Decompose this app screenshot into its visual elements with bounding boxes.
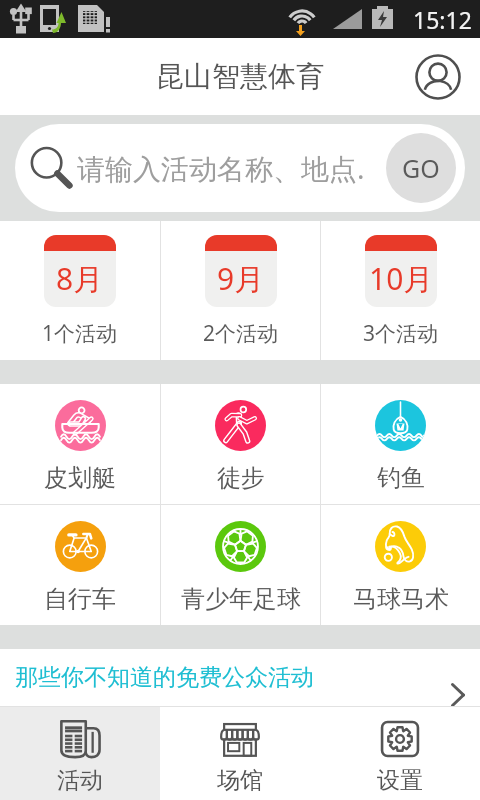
- button[interactable]: 钓鱼: [321, 384, 480, 504]
- button[interactable]: 那些你不知道的免费公众活动: [0, 649, 480, 707]
- staticText: 皮划艇: [44, 463, 116, 493]
- staticText: 8月: [56, 258, 104, 299]
- button[interactable]: 设置: [320, 707, 480, 800]
- staticText: GO: [402, 151, 440, 185]
- staticText: 3个活动: [363, 319, 439, 348]
- staticText: 马球马术: [353, 584, 449, 614]
- staticText: 那些你不知道的免费公众活动: [15, 663, 314, 692]
- staticText: 活动: [57, 766, 103, 795]
- button[interactable]: 8月: [0, 221, 160, 360]
- button[interactable]: 请输入活动名称、地点.: [15, 124, 465, 212]
- staticText: 9月: [217, 258, 265, 299]
- staticText: 10月: [369, 258, 434, 299]
- staticText: 15:12: [413, 4, 472, 35]
- staticText: 徒步: [217, 463, 265, 493]
- button[interactable]: 青少年足球: [161, 505, 320, 625]
- button[interactable]: 9月: [161, 221, 320, 360]
- staticText: 2个活动: [203, 319, 279, 348]
- button[interactable]: GO: [386, 133, 456, 203]
- staticText: 1个活动: [42, 319, 118, 348]
- staticText: 设置: [377, 766, 423, 795]
- button[interactable]: 皮划艇: [0, 384, 160, 504]
- button[interactable]: 场馆: [160, 707, 320, 800]
- staticText: 自行车: [44, 584, 116, 614]
- button[interactable]: 10月: [321, 221, 480, 360]
- staticText: 请输入活动名称、地点.: [77, 149, 365, 187]
- staticText: 场馆: [217, 766, 263, 795]
- staticText: 青少年足球: [181, 584, 301, 614]
- button[interactable]: 马球马术: [321, 505, 480, 625]
- staticText: 昆山智慧体育: [156, 59, 324, 94]
- staticText: 钓鱼: [377, 463, 425, 493]
- button[interactable]: 活动: [0, 707, 160, 800]
- button[interactable]: Profile: [412, 51, 464, 103]
- button[interactable]: 徒步: [161, 384, 320, 504]
- button[interactable]: 自行车: [0, 505, 160, 625]
